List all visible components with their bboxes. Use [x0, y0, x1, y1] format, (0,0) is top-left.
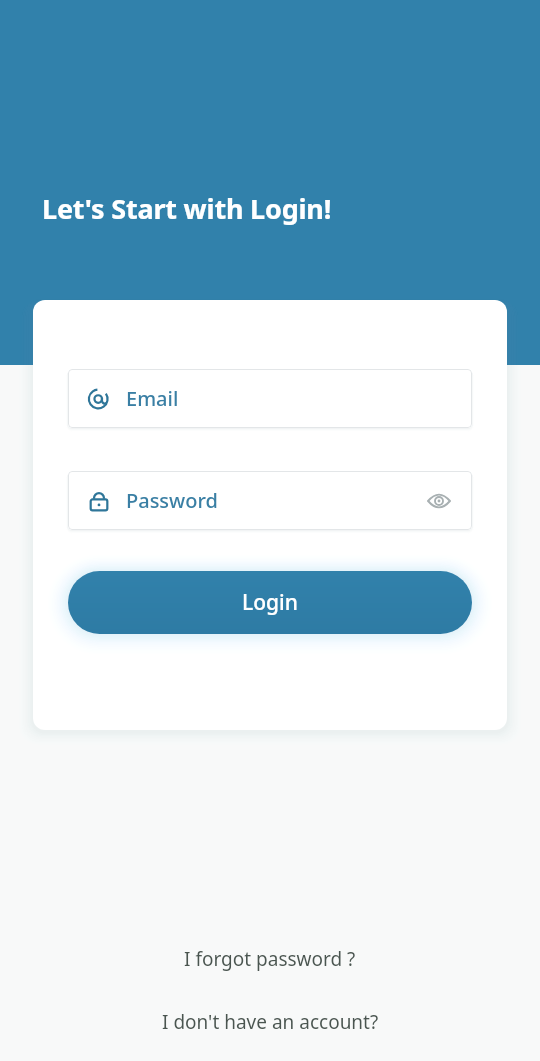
staticText: Password [126, 487, 218, 514]
staticText: Let's Start with Login! [42, 190, 332, 227]
staticText: Login [242, 588, 298, 617]
button[interactable]: I don't have an account? [148, 1003, 393, 1041]
button[interactable]: I forgot password ? [170, 940, 370, 978]
staticText: Email [126, 385, 179, 412]
button[interactable]: Password [68, 471, 472, 530]
button[interactable]: Login [68, 571, 472, 634]
button[interactable]: Show password [422, 484, 456, 518]
staticText: I forgot password ? [184, 946, 356, 972]
button[interactable]: Email [68, 369, 472, 428]
staticText: I don't have an account? [162, 1009, 379, 1035]
